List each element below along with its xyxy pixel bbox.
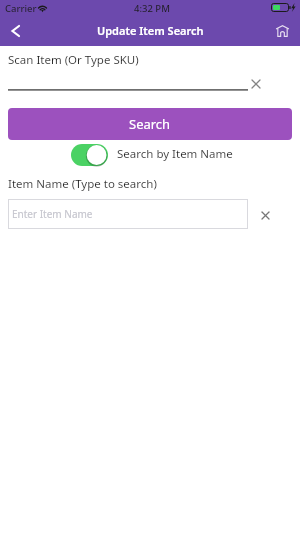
button[interactable]: Search [8,108,292,140]
staticText: Search [129,115,171,133]
button[interactable]: Search by Item Name [71,144,108,166]
button[interactable]: Clear item name [255,205,275,225]
staticText: Enter Item Name [12,207,93,221]
staticText: Carrier [5,2,37,15]
button[interactable]: Back [0,18,30,44]
staticText: Search by Item Name [117,146,233,162]
staticText: 4:32 PM [134,2,170,15]
button[interactable]: Clear scanned item [246,74,266,94]
staticText: Scan Item (Or Type SKU) [8,52,139,68]
button[interactable]: Home [269,18,296,44]
staticText: Update Item Search [97,23,204,38]
staticText: Item Name (Type to search) [8,176,157,192]
button[interactable]: Enter Item Name [8,199,248,229]
